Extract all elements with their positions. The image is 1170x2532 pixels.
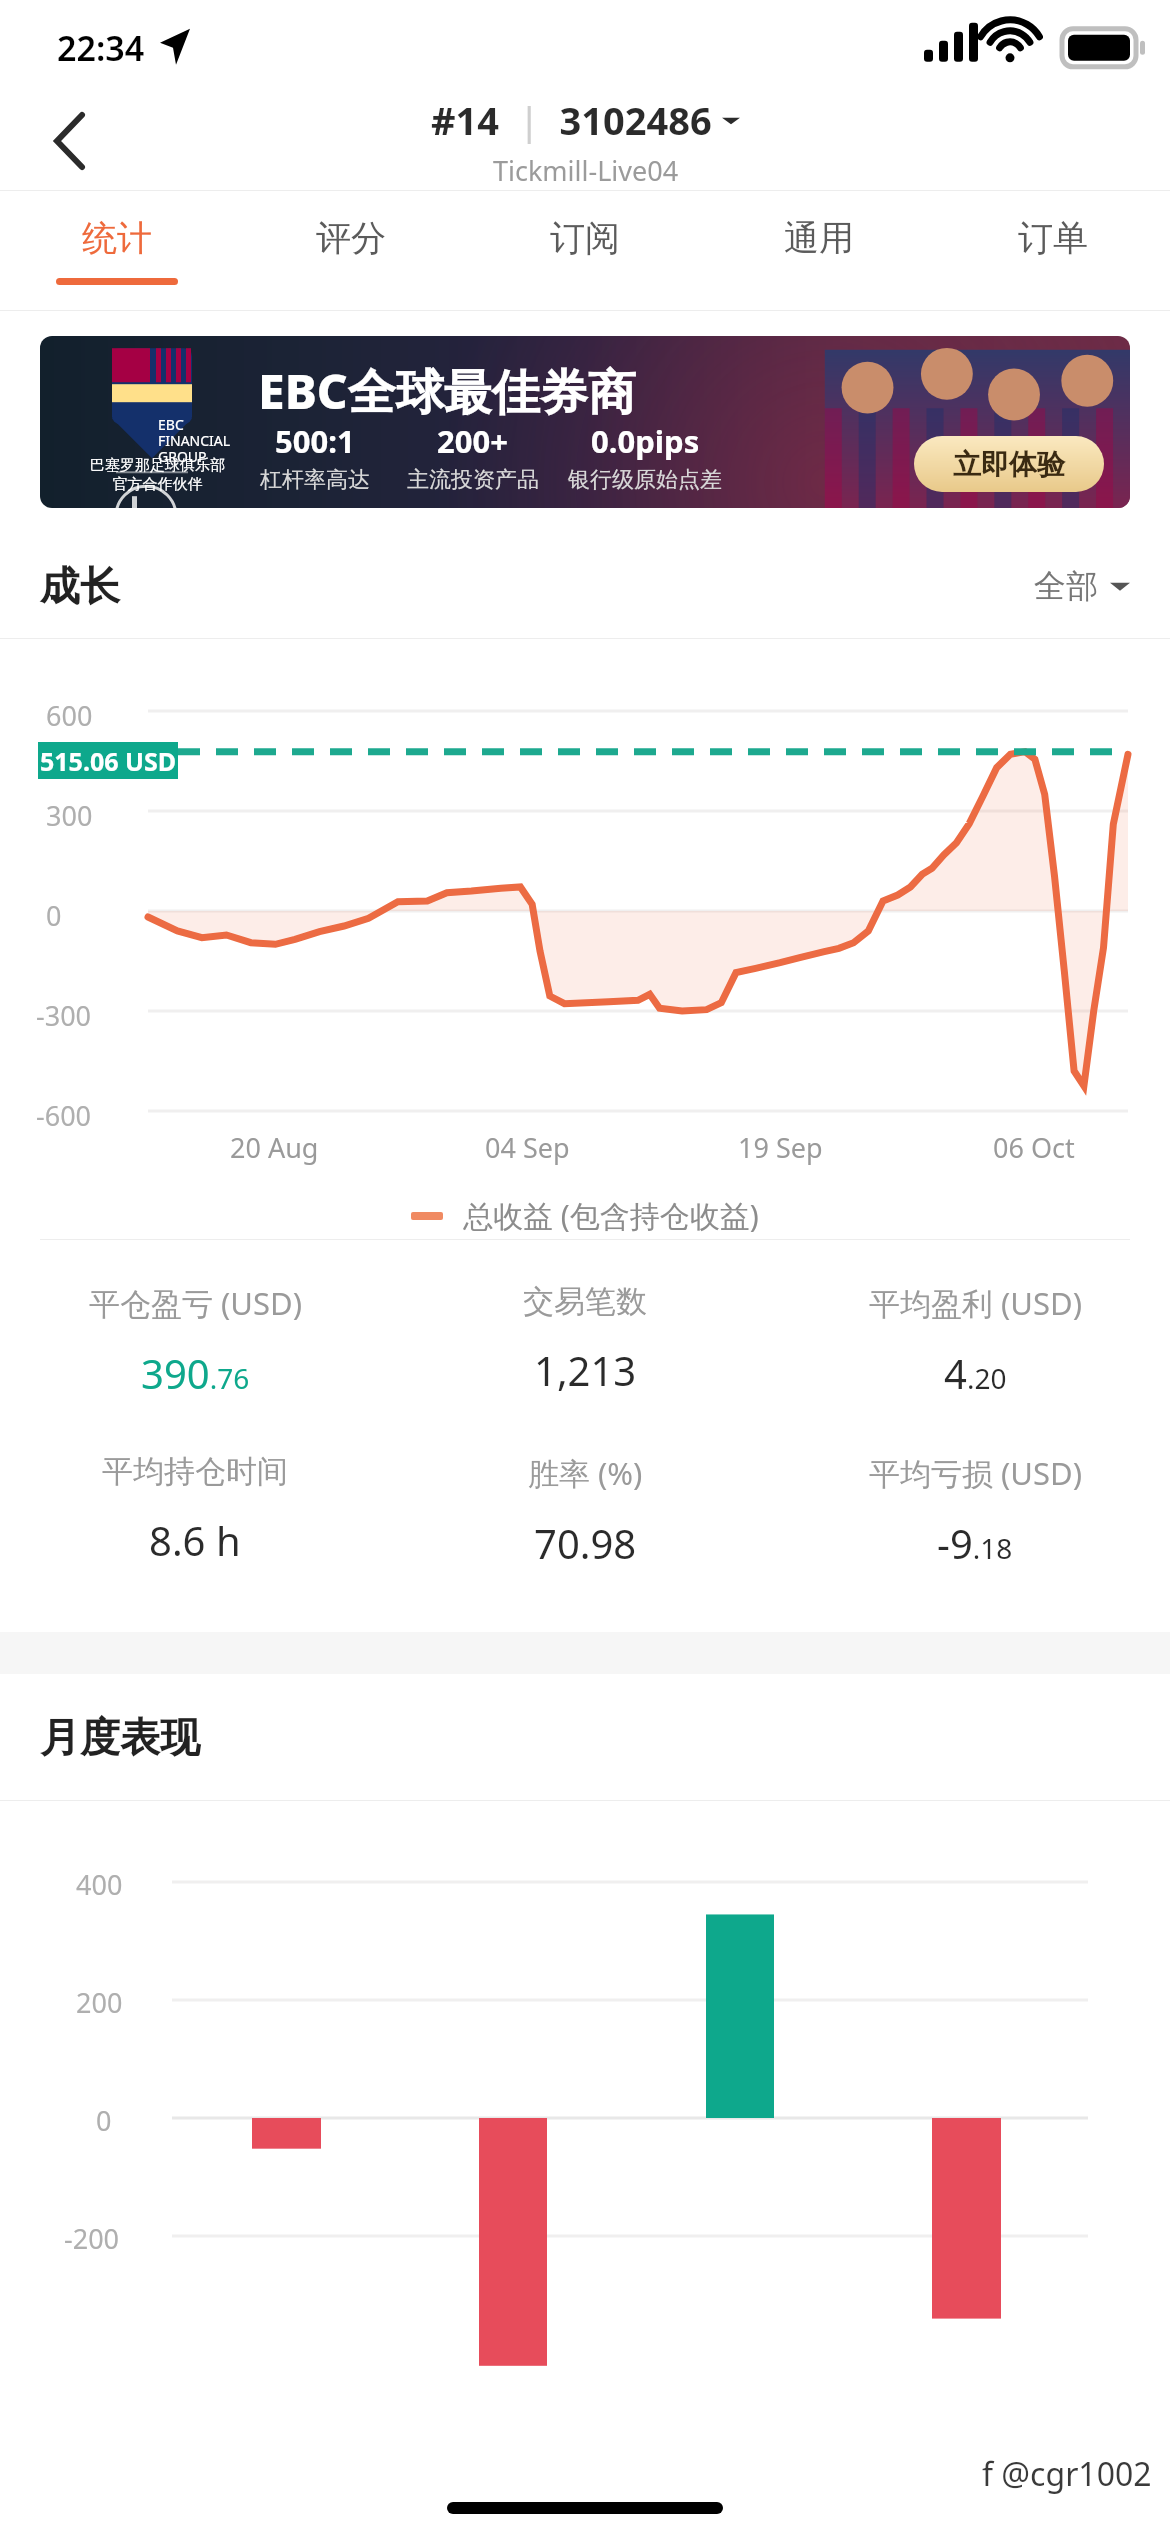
staticText: -200 (64, 2220, 120, 2257)
staticText: 20 Aug (230, 1129, 319, 1166)
button[interactable]: 评分 (234, 191, 468, 310)
staticText: 交易笔数 (523, 1282, 647, 1321)
staticText: 0.0pips (591, 420, 700, 462)
staticText: 300 (46, 797, 93, 834)
staticText: #14 | 3102486 (431, 94, 712, 146)
staticText: EBC全球最佳券商 (258, 358, 636, 424)
staticText: 0 (46, 897, 62, 934)
button[interactable]: 通用 (702, 191, 936, 310)
staticText: -300 (36, 997, 92, 1034)
button[interactable]: 平均盈利 (USD) (780, 1282, 1170, 1400)
button[interactable]: Back (30, 101, 110, 181)
button[interactable]: 胜率 (%) (390, 1452, 780, 1570)
button[interactable]: 统计 (0, 191, 234, 310)
button[interactable]: 平均亏损 (USD) (780, 1452, 1170, 1570)
staticText: 200+ (437, 420, 508, 462)
staticText: 评分 (316, 216, 386, 260)
staticText: 通用 (784, 216, 854, 260)
staticText: -9.18 (937, 1516, 1013, 1570)
staticText: 巴塞罗那足球俱乐部 官方合作伙伴 (90, 456, 225, 494)
staticText: EBC FINANCIAL GROUP (158, 415, 231, 466)
staticText: 胜率 (%) (528, 1452, 643, 1494)
staticText: 订单 (1018, 216, 1088, 260)
staticText: 平均盈利 (USD) (869, 1282, 1082, 1324)
staticText: 06 Oct (993, 1129, 1075, 1166)
staticText: 22:34 (57, 25, 145, 71)
staticText: 平均持仓时间 (102, 1452, 288, 1491)
staticText: 平均亏损 (USD) (869, 1452, 1082, 1494)
staticText: f @cgr1002 (982, 2452, 1152, 2496)
staticText: 1,213 (534, 1343, 637, 1397)
button[interactable]: 平均持仓时间 (0, 1452, 390, 1567)
button[interactable]: 平仓盈亏 (USD) (0, 1282, 390, 1400)
button[interactable]: 立即体验 (914, 436, 1104, 492)
staticText: 70.98 (534, 1516, 637, 1570)
staticText: 月度表现 (40, 1712, 200, 1762)
staticText: 统计 (82, 216, 152, 260)
staticText: 600 (46, 697, 93, 734)
button[interactable]: 订单 (936, 191, 1170, 310)
staticText: 总收益 (包含持仓收益) (463, 1195, 759, 1236)
staticText: 杠杆率高达 (260, 466, 370, 494)
staticText: 立即体验 (953, 447, 1065, 482)
staticText: 200 (76, 1984, 123, 2021)
staticText: 全部 (1034, 566, 1098, 606)
staticText: 19 Sep (738, 1129, 823, 1166)
button[interactable]: 订阅 (468, 191, 702, 310)
staticText: 银行级原始点差 (568, 466, 722, 494)
staticText: 订阅 (550, 216, 620, 260)
staticText: 0 (96, 2102, 112, 2139)
staticText: 主流投资产品 (407, 466, 539, 494)
staticText: 04 Sep (485, 1129, 570, 1166)
staticText: 4.20 (944, 1346, 1007, 1400)
button[interactable]: EBC全球最佳券商 (40, 336, 1130, 508)
staticText: 500:1 (275, 420, 355, 462)
staticText: 515.06 USD (40, 744, 177, 778)
staticText: 400 (76, 1866, 123, 1903)
button[interactable]: #14 | 3102486 (431, 94, 740, 189)
staticText: 平仓盈亏 (USD) (89, 1282, 302, 1324)
button[interactable]: 交易笔数 (390, 1282, 780, 1397)
staticText: -600 (36, 1097, 92, 1134)
button[interactable]: 全部 (1034, 566, 1130, 606)
staticText: 成长 (40, 561, 120, 611)
staticText: Tickmill-Live04 (493, 152, 679, 189)
staticText: 390.76 (141, 1346, 250, 1400)
staticText: 8.6 h (149, 1513, 241, 1567)
